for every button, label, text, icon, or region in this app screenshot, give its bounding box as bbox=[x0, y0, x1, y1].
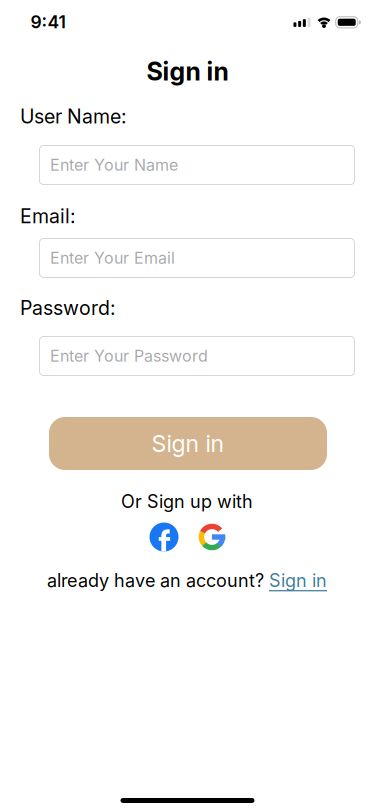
button[interactable]: Sign up with Facebook bbox=[149, 522, 178, 551]
staticText: Sign in bbox=[151, 429, 224, 458]
staticText: Email: bbox=[20, 204, 76, 228]
staticText: already have an account? bbox=[47, 570, 269, 591]
button[interactable]: Sign in bbox=[49, 417, 327, 470]
staticText: Enter Your Email bbox=[50, 248, 175, 268]
staticText: Enter Your Name bbox=[50, 155, 178, 175]
staticText: Enter Your Password bbox=[50, 346, 208, 366]
staticText: User Name: bbox=[20, 105, 127, 128]
staticText: Password: bbox=[20, 296, 116, 320]
staticText: 9:41 bbox=[30, 11, 65, 33]
staticText: Sign in bbox=[146, 56, 228, 87]
textField[interactable]: Enter Your Name bbox=[50, 152, 355, 178]
staticText: Sign in bbox=[269, 570, 327, 591]
textField[interactable]: Enter Your Email bbox=[50, 245, 355, 271]
button[interactable]: Sign in bbox=[269, 570, 327, 591]
staticText: Or Sign up with bbox=[121, 491, 253, 512]
textField[interactable]: Enter Your Password bbox=[50, 343, 355, 369]
button[interactable]: Sign up with Google bbox=[198, 523, 225, 550]
